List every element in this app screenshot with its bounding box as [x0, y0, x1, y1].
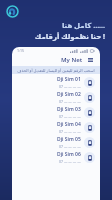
button[interactable]: Dji Sim 04	[12, 120, 100, 135]
button[interactable]: Dji Sim 03	[12, 105, 100, 120]
button[interactable]: Dji Sim 02	[12, 90, 100, 105]
staticText: 07 — — — —	[59, 159, 81, 164]
staticText: Dji Sim 03	[57, 106, 81, 113]
staticText: 1:15	[17, 48, 24, 53]
staticText: Dji Sim 06	[57, 151, 81, 158]
staticText: حنا نظمولك أرقامك !	[34, 32, 105, 42]
button[interactable]: Menu	[86, 56, 95, 65]
staticText: كامل هنا ......	[61, 21, 105, 31]
staticText: My Net	[61, 56, 83, 64]
staticText: 07 — — — —	[59, 84, 81, 89]
staticText: Dji Sim 04	[57, 121, 81, 128]
button[interactable]: App logo	[5, 4, 20, 19]
staticText: Dji Sim 02	[57, 91, 81, 98]
button[interactable]: Dji Sim 05	[12, 135, 100, 150]
button[interactable]: Dji Sim 01	[12, 75, 100, 90]
staticText: 07 — — — —	[59, 129, 81, 134]
button[interactable]: Dji Sim 06	[12, 150, 100, 165]
staticText: 07 — — — —	[59, 99, 81, 104]
staticText: Dji Sim 05	[57, 136, 81, 143]
staticText: Dji Sim 01	[57, 76, 81, 83]
staticText: 07 — — — —	[59, 144, 81, 149]
staticText: اسحب الرقم لليمين أو لليسار للتعديل أو ا…	[17, 68, 95, 73]
staticText: 07 — — — —	[59, 114, 81, 119]
